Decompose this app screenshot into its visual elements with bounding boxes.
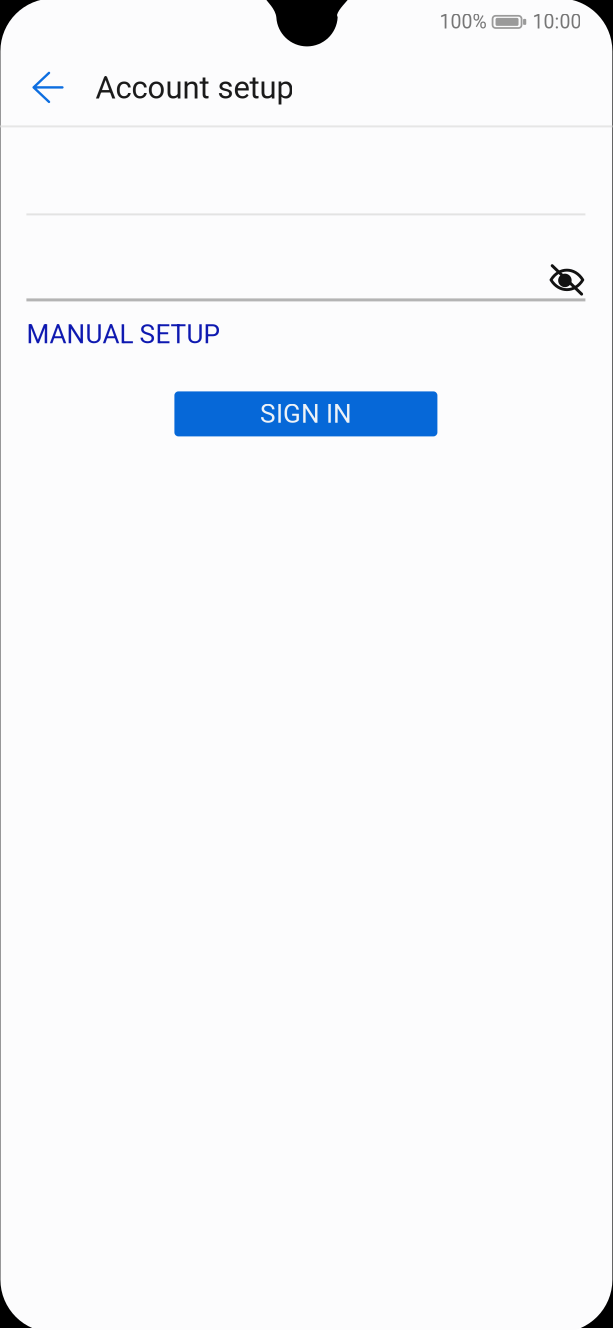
button[interactable]: Back: [12, 48, 95, 120]
button[interactable]: Show password: [533, 231, 585, 283]
staticText: MANUAL SETUP: [26, 319, 219, 350]
button[interactable]: SIGN IN: [174, 391, 437, 436]
staticText: SIGN IN: [260, 399, 352, 429]
staticText: Account setup: [95, 70, 293, 106]
button[interactable]: MANUAL SETUP: [26, 301, 219, 347]
staticText: 100%: [439, 10, 486, 33]
staticText: 10:00: [532, 10, 581, 33]
